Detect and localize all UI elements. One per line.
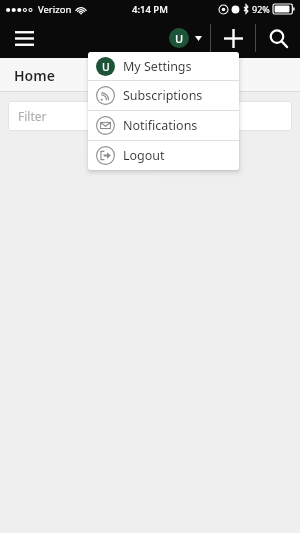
staticText: My Settings [123, 58, 192, 75]
button[interactable]: Account [161, 18, 210, 58]
staticText: Logout [123, 147, 165, 164]
staticText: Verizon [38, 3, 72, 16]
staticText: 4:14 PM [132, 3, 168, 16]
button[interactable]: Notifications [88, 111, 239, 140]
staticText: Home [14, 66, 55, 85]
staticText: U [102, 60, 110, 74]
staticText: Filter [18, 108, 47, 124]
button[interactable]: Subscriptions [88, 81, 239, 110]
staticText: Notifications [123, 117, 198, 134]
button[interactable]: U [88, 52, 239, 80]
button[interactable]: Add [211, 18, 255, 58]
button[interactable]: Logout [88, 141, 239, 170]
staticText: U [175, 31, 184, 46]
button[interactable]: Search [256, 18, 300, 58]
staticText: Subscriptions [123, 87, 203, 104]
button[interactable]: Menu [4, 18, 44, 58]
button[interactable]: Filter [8, 101, 292, 131]
staticText: 92% [252, 3, 270, 15]
